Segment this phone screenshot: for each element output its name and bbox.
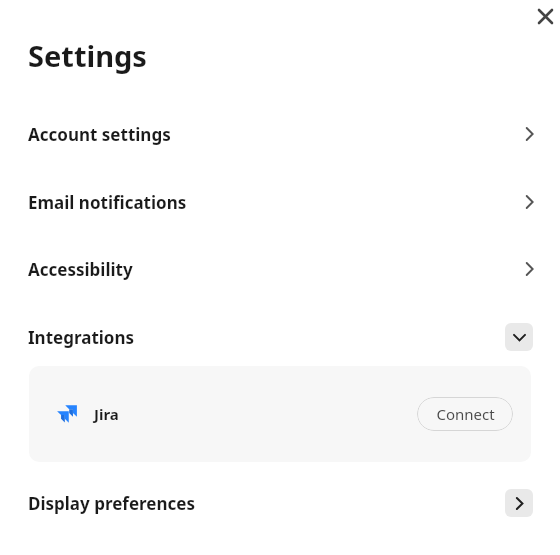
staticText: Account settings <box>28 123 171 146</box>
staticText: Integrations <box>28 326 135 349</box>
button[interactable]: Display preferences <box>0 489 560 517</box>
staticText: Display preferences <box>28 492 195 515</box>
button[interactable]: Email notifications <box>0 188 560 216</box>
button[interactable]: Collapse Integrations <box>505 323 533 351</box>
button[interactable]: Close <box>528 0 560 32</box>
staticText: Settings <box>28 36 147 75</box>
button[interactable]: Integrations <box>0 323 560 351</box>
staticText: Accessibility <box>28 258 133 281</box>
button[interactable]: Expand Display preferences <box>505 489 533 517</box>
staticText: Connect <box>436 404 495 424</box>
staticText: Jira <box>94 404 119 424</box>
button[interactable]: Connect <box>417 397 513 431</box>
button[interactable]: Accessibility <box>0 255 560 283</box>
staticText: Email notifications <box>28 191 187 214</box>
button[interactable]: Account settings <box>0 120 560 148</box>
